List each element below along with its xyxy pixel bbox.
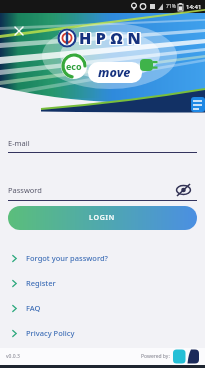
button[interactable]: Privacy Policy bbox=[0, 328, 205, 338]
staticText: HPΩN bbox=[79, 26, 146, 48]
staticText: Forgot your password? bbox=[26, 253, 108, 263]
staticText: LOGIN bbox=[89, 213, 116, 223]
staticText: HPΩN bbox=[78, 26, 145, 48]
staticText: HPΩN bbox=[78, 27, 145, 49]
button[interactable] bbox=[8, 21, 26, 39]
staticText: 71% bbox=[166, 3, 176, 10]
staticText: HPΩN bbox=[79, 28, 146, 50]
staticText: FAQ bbox=[26, 303, 41, 313]
button[interactable]: Forgot your password? bbox=[0, 253, 205, 263]
staticText: HPΩN bbox=[80, 26, 147, 48]
staticText: Powered by: bbox=[141, 353, 170, 360]
button[interactable]: Register bbox=[0, 278, 205, 288]
staticText: HPΩN bbox=[78, 28, 145, 50]
button[interactable] bbox=[173, 349, 199, 364]
staticText: HPΩN bbox=[79, 27, 146, 49]
staticText: move bbox=[98, 64, 131, 81]
staticText: eco bbox=[66, 60, 82, 72]
staticText: Password bbox=[8, 185, 42, 195]
staticText: E-mail bbox=[8, 138, 30, 148]
staticText: Privacy Policy bbox=[26, 328, 75, 338]
staticText: Register bbox=[26, 278, 56, 288]
button[interactable] bbox=[176, 184, 193, 196]
button[interactable]: LOGIN bbox=[8, 206, 197, 230]
staticText: HPΩN bbox=[80, 28, 147, 50]
button[interactable]: FAQ bbox=[0, 303, 205, 313]
staticText: HPΩN bbox=[80, 27, 147, 49]
staticText: 14:41 bbox=[186, 3, 202, 11]
staticText: v0.0.3 bbox=[6, 353, 20, 360]
